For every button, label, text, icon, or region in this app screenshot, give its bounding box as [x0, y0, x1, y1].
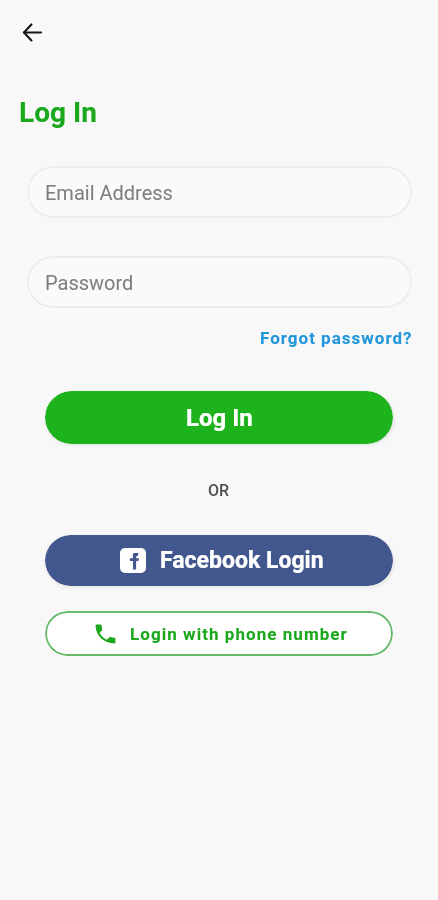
- button[interactable]: Email Address: [27, 166, 412, 218]
- button[interactable]: Password: [27, 256, 412, 308]
- staticText: OR: [208, 481, 230, 500]
- staticText: Facebook Login: [160, 547, 324, 574]
- button[interactable]: Facebook Login: [45, 535, 393, 586]
- button[interactable]: Log In: [45, 391, 393, 444]
- staticText: Login with phone number: [130, 624, 348, 644]
- staticText: Password: [45, 271, 134, 294]
- staticText: Log In: [19, 96, 97, 129]
- staticText: Log In: [186, 404, 253, 432]
- staticText: Forgot password?: [260, 328, 413, 348]
- button[interactable]: Login with phone number: [45, 611, 393, 656]
- button[interactable]: Forgot password?: [256, 325, 417, 351]
- staticText: Email Address: [45, 181, 173, 204]
- button[interactable]: Back: [10, 11, 53, 54]
